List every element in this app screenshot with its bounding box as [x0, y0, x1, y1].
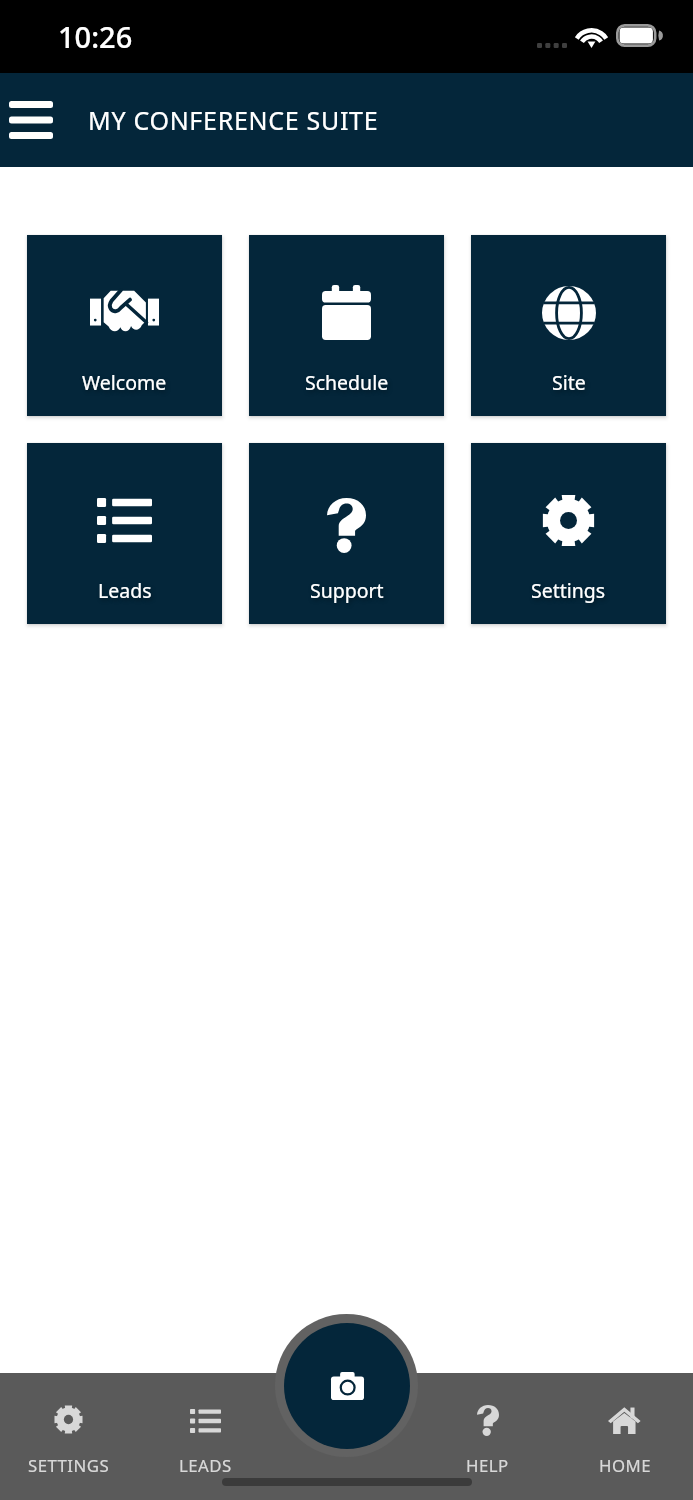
button[interactable]: Open navigation menu — [0, 73, 62, 167]
staticText: HELP — [466, 1454, 509, 1477]
button[interactable]: Camera — [275, 1314, 418, 1457]
button[interactable]: Site — [471, 235, 666, 416]
button[interactable]: SETTINGS — [0, 1373, 137, 1500]
button[interactable]: Support — [249, 443, 444, 624]
button[interactable]: Settings — [471, 443, 666, 624]
staticText: Site — [552, 369, 586, 396]
button[interactable]: Schedule — [249, 235, 444, 416]
staticText: Settings — [531, 577, 606, 604]
button[interactable]: HOME — [556, 1373, 693, 1500]
staticText: 10:26 — [58, 17, 133, 56]
staticText: Support — [310, 577, 384, 604]
button[interactable]: LEADS — [137, 1373, 274, 1500]
staticText: MY CONFERENCE SUITE — [88, 103, 379, 137]
staticText: Leads — [98, 577, 152, 604]
button[interactable]: Leads — [27, 443, 222, 624]
button[interactable]: Welcome — [27, 235, 222, 416]
button[interactable]: HELP — [419, 1373, 556, 1500]
staticText: Welcome — [82, 369, 167, 396]
staticText: HOME — [599, 1454, 651, 1477]
staticText: LEADS — [179, 1454, 232, 1477]
staticText: Schedule — [305, 369, 389, 396]
staticText: SETTINGS — [28, 1454, 110, 1477]
